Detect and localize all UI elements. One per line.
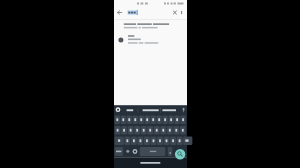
button[interactable] (140, 147, 165, 156)
button[interactable] (170, 8, 179, 18)
button[interactable] (175, 149, 186, 160)
button[interactable] (114, 33, 187, 46)
button[interactable] (116, 8, 126, 18)
button[interactable] (114, 21, 187, 31)
